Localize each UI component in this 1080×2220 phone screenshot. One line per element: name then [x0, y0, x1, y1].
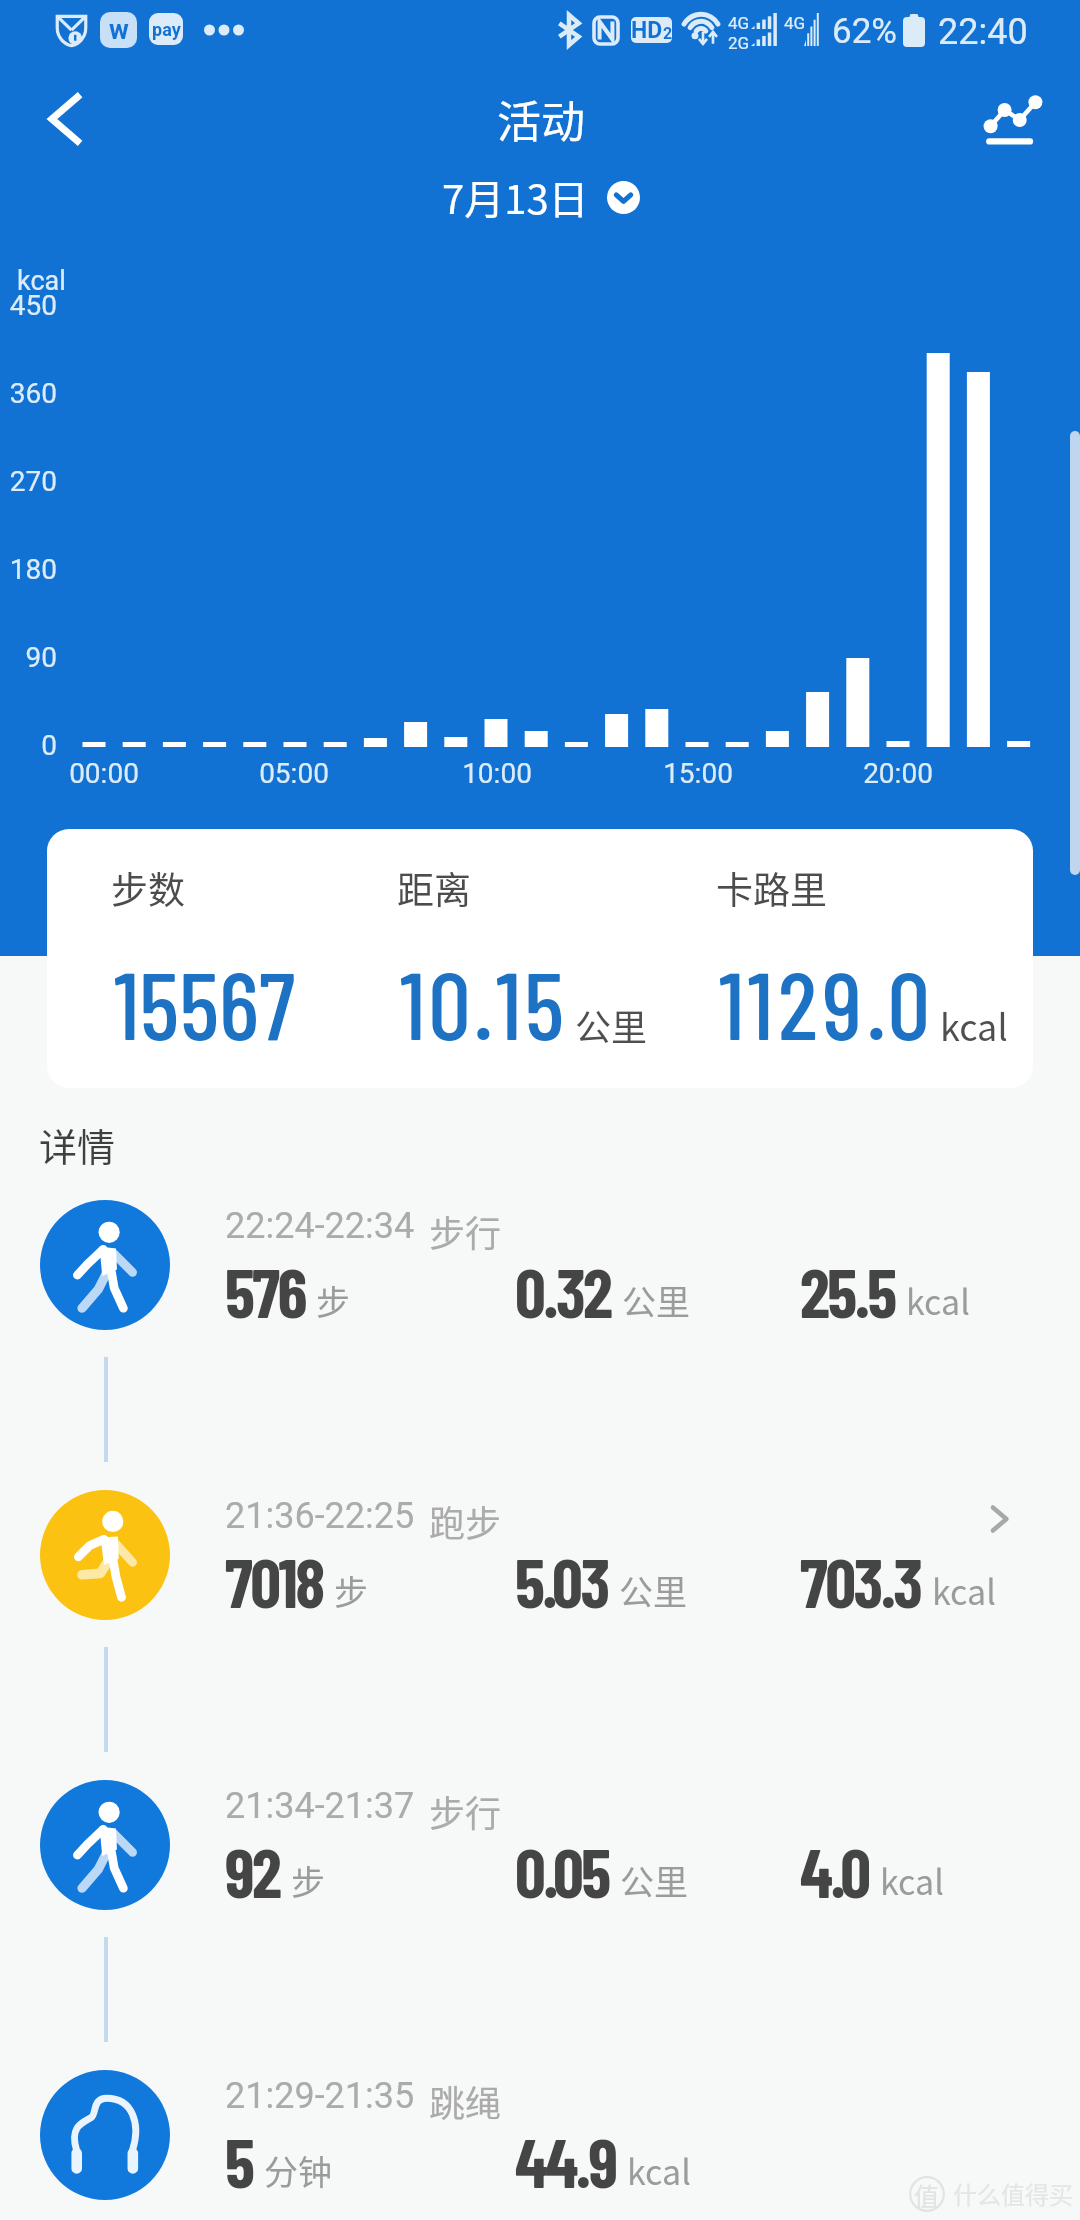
staticText: 步 [316, 1276, 350, 1325]
staticText: 22:40 [938, 11, 1028, 53]
staticText: 22:24-22:34 [225, 1205, 415, 1247]
button[interactable]: 步数 [47, 829, 1033, 1088]
staticText: 21:29-21:35 [225, 2075, 415, 2117]
staticText: 4G [728, 13, 750, 33]
staticText: 跑步 [429, 1495, 502, 1547]
button[interactable]: 21:29-21:35 [0, 2040, 1080, 2220]
staticText: 详情 [39, 1117, 116, 1172]
staticText: kcal [627, 2146, 691, 2195]
staticText: 距离 [397, 861, 471, 915]
staticText: kcal [940, 999, 1008, 1051]
staticText: 公里 [620, 1856, 688, 1905]
staticText: 4.0 [800, 1830, 869, 1912]
staticText: 0.32 [515, 1250, 611, 1332]
staticText: 15:00 [618, 757, 778, 790]
staticText: 5 [225, 2120, 253, 2202]
staticText: 10.15 [400, 945, 568, 1059]
staticText: 180 [0, 553, 57, 586]
staticText: 步 [334, 1566, 368, 1615]
staticText: 4G [784, 13, 806, 33]
staticText: 值 [914, 2177, 940, 2211]
staticText: 00:00 [24, 757, 184, 790]
staticText: 1129.0 [719, 945, 935, 1059]
staticText: 公里 [622, 1276, 690, 1325]
staticText: 44.9 [515, 2120, 616, 2202]
button[interactable]: 22:24-22:34 [0, 1170, 1080, 1460]
button[interactable]: 21:36-22:25 [0, 1460, 1080, 1750]
staticText: 25.5 [800, 1250, 895, 1332]
button[interactable]: Back [20, 75, 108, 163]
staticText: 10:00 [417, 757, 577, 790]
staticText: 0.05 [515, 1830, 609, 1912]
staticText: 5.03 [515, 1540, 608, 1622]
staticText: 2 [663, 24, 672, 43]
button[interactable]: 21:34-21:37 [0, 1750, 1080, 2040]
staticText: 360 [0, 377, 57, 410]
staticText: 步数 [111, 861, 185, 915]
staticText: 公里 [575, 999, 648, 1051]
button[interactable]: 7月13日 [442, 168, 640, 226]
staticText: 21:34-21:37 [225, 1785, 415, 1827]
staticText: 步行 [429, 1205, 502, 1257]
staticText: 92 [225, 1830, 280, 1912]
staticText: kcal [17, 265, 66, 297]
staticText: 2G [728, 33, 750, 53]
staticText: kcal [880, 1856, 944, 1905]
staticText: 20:00 [818, 757, 978, 790]
staticText: 450 [0, 289, 57, 322]
staticText: 21:36-22:25 [225, 1495, 415, 1537]
staticText: 90 [0, 641, 57, 674]
staticText: pay [152, 19, 181, 40]
staticText: 703.3 [800, 1540, 921, 1622]
staticText: 分钟 [264, 2146, 332, 2195]
staticText: 576 [225, 1250, 305, 1332]
staticText: 活动 [497, 87, 585, 151]
staticText: 270 [0, 465, 57, 498]
button[interactable]: Trend chart [968, 76, 1058, 166]
staticText: kcal [906, 1276, 970, 1325]
staticText: 7月13日 [442, 168, 589, 226]
staticText: 05:00 [214, 757, 374, 790]
staticText: kcal [932, 1566, 996, 1615]
staticText: 步 [291, 1856, 325, 1905]
staticText: 62% [832, 11, 897, 52]
staticText: 跳绳 [429, 2075, 502, 2127]
staticText: 卡路里 [716, 861, 827, 915]
staticText: 0 [0, 729, 57, 762]
staticText: w [109, 14, 129, 46]
staticText: 7018 [225, 1540, 323, 1622]
staticText: 15567 [114, 945, 296, 1059]
staticText: HD [631, 17, 663, 43]
staticText: 什么值得买 [953, 2176, 1073, 2211]
staticText: 步行 [429, 1785, 502, 1837]
staticText: 公里 [619, 1566, 687, 1615]
